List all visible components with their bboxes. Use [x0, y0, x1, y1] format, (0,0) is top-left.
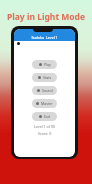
staticText: Stats [43, 75, 52, 80]
button[interactable]: Play [32, 60, 57, 69]
button[interactable]: Exit [32, 112, 57, 121]
staticText: Sudoku Level 1 [14, 35, 75, 40]
staticText: Score: 0 [38, 131, 52, 136]
button[interactable]: Master [32, 99, 57, 108]
staticText: Play in Light Mode [0, 11, 92, 23]
staticText: Sound [42, 88, 53, 93]
staticText: Level 1 of 90 [34, 124, 55, 129]
staticText: Play [44, 62, 51, 67]
staticText: Master [41, 101, 53, 106]
button[interactable]: Stats [32, 73, 57, 82]
staticText: Exit [44, 114, 51, 119]
button[interactable]: Sound [32, 86, 57, 95]
